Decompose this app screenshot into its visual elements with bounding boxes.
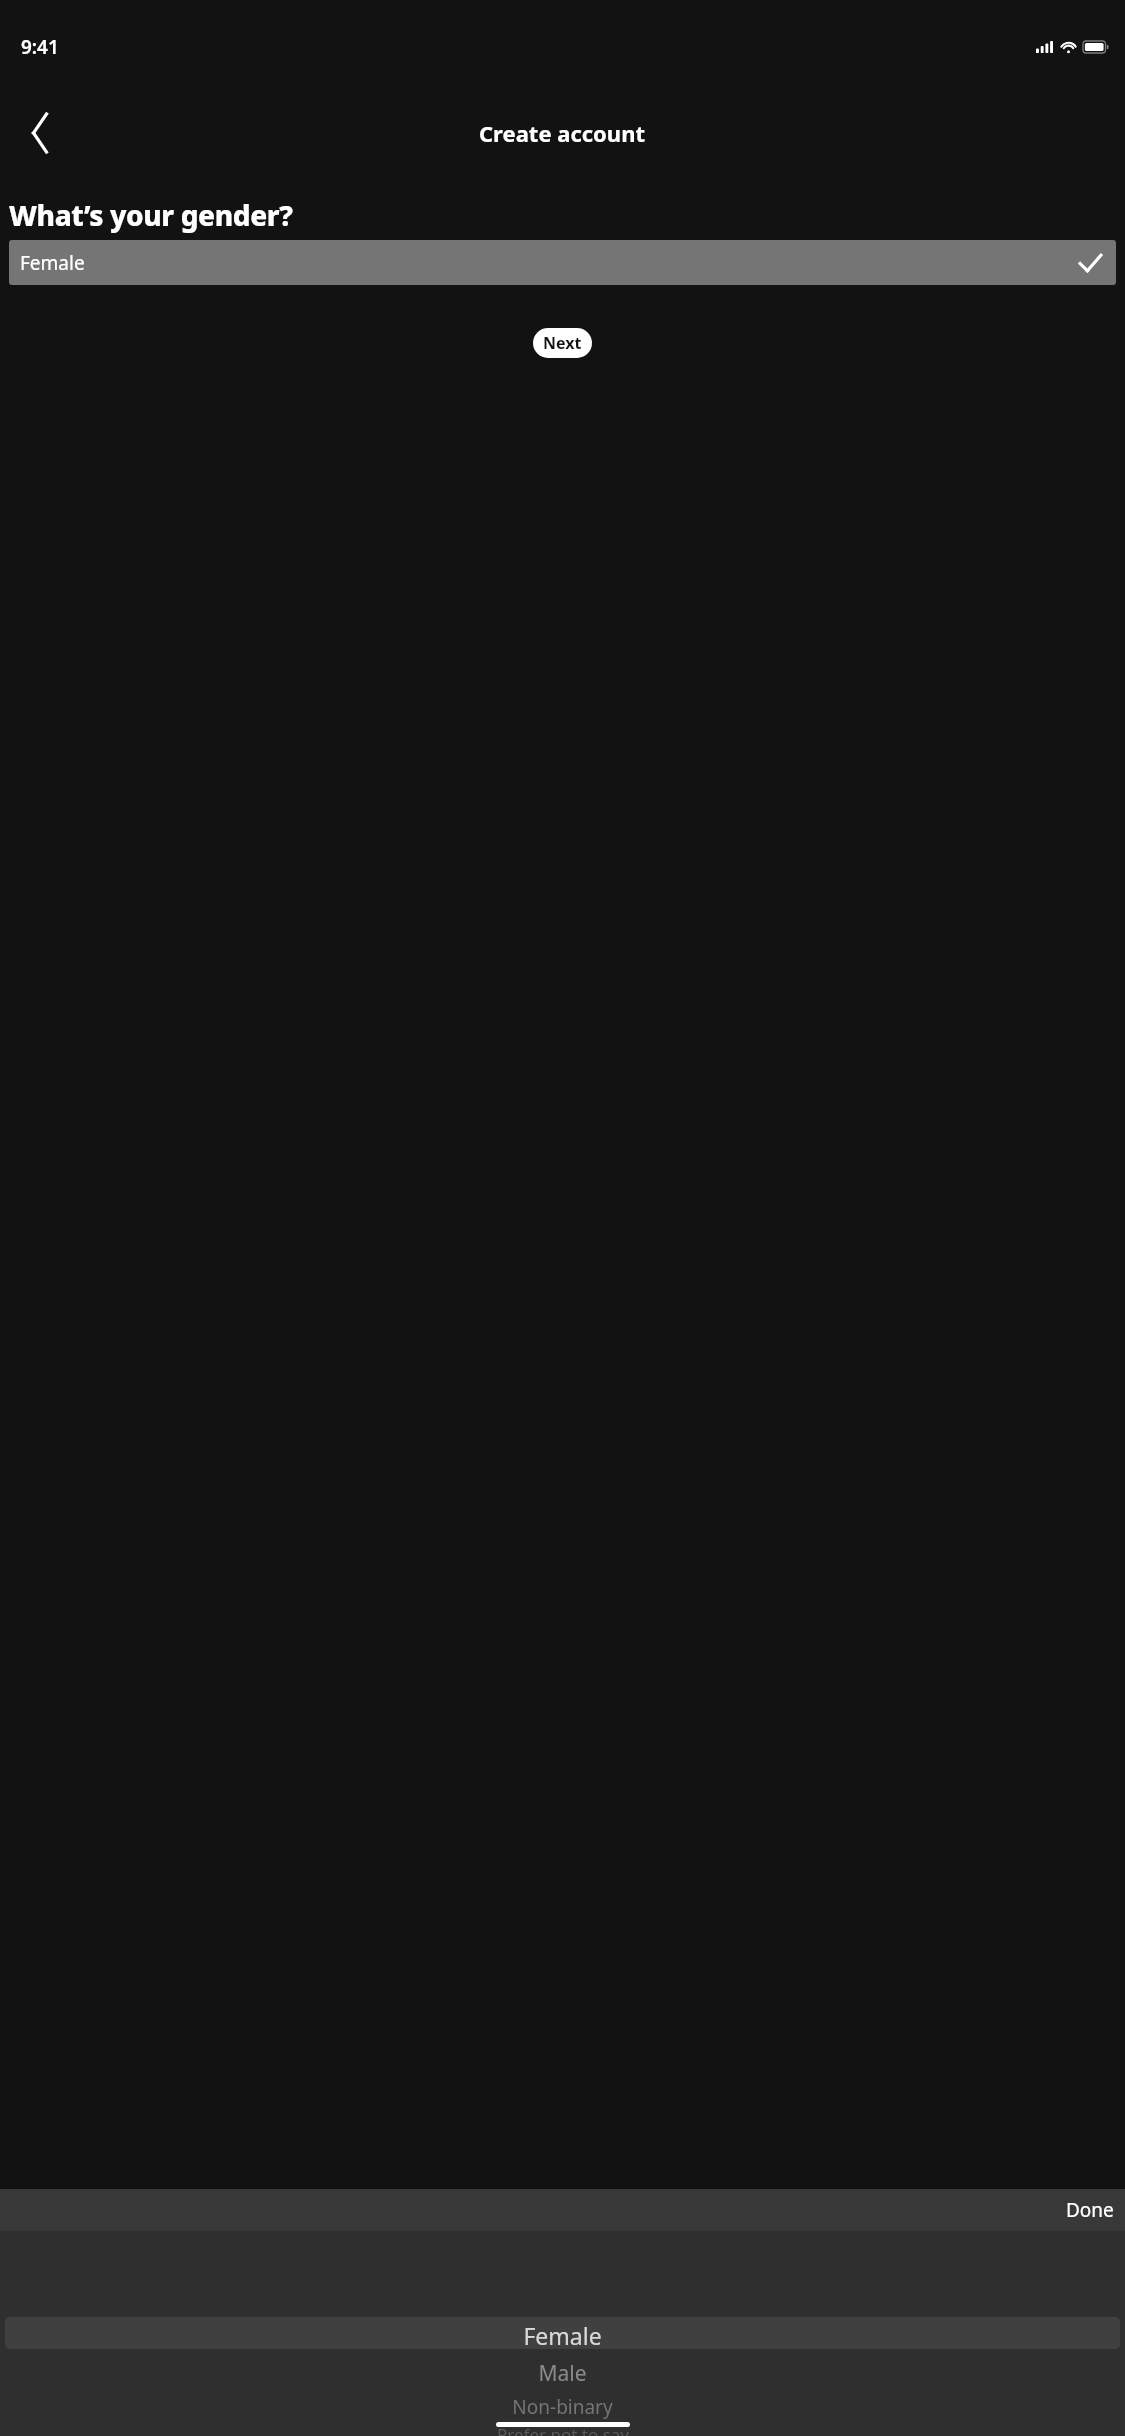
button[interactable]: Male — [0, 2359, 1125, 2388]
button[interactable]: Female — [0, 2320, 1125, 2351]
staticText: Done — [1066, 2197, 1114, 2223]
button[interactable]: Female — [9, 240, 1116, 285]
staticText: Female — [20, 250, 85, 276]
staticText: Prefer not to say — [497, 2423, 629, 2436]
staticText: What’s your gender? — [9, 196, 293, 234]
staticText: 9:41 — [21, 34, 59, 60]
button[interactable]: Next — [533, 328, 592, 358]
staticText: Create account — [479, 118, 646, 148]
button[interactable]: Non-binary — [0, 2394, 1125, 2420]
staticText: Next — [543, 332, 582, 354]
staticText: Female — [523, 2320, 602, 2351]
staticText: Male — [538, 2359, 587, 2388]
button[interactable]: Prefer not to say — [0, 2423, 1125, 2436]
staticText: Non-binary — [512, 2394, 613, 2420]
button[interactable]: Done — [1055, 2191, 1125, 2229]
button[interactable]: Back — [12, 105, 68, 161]
